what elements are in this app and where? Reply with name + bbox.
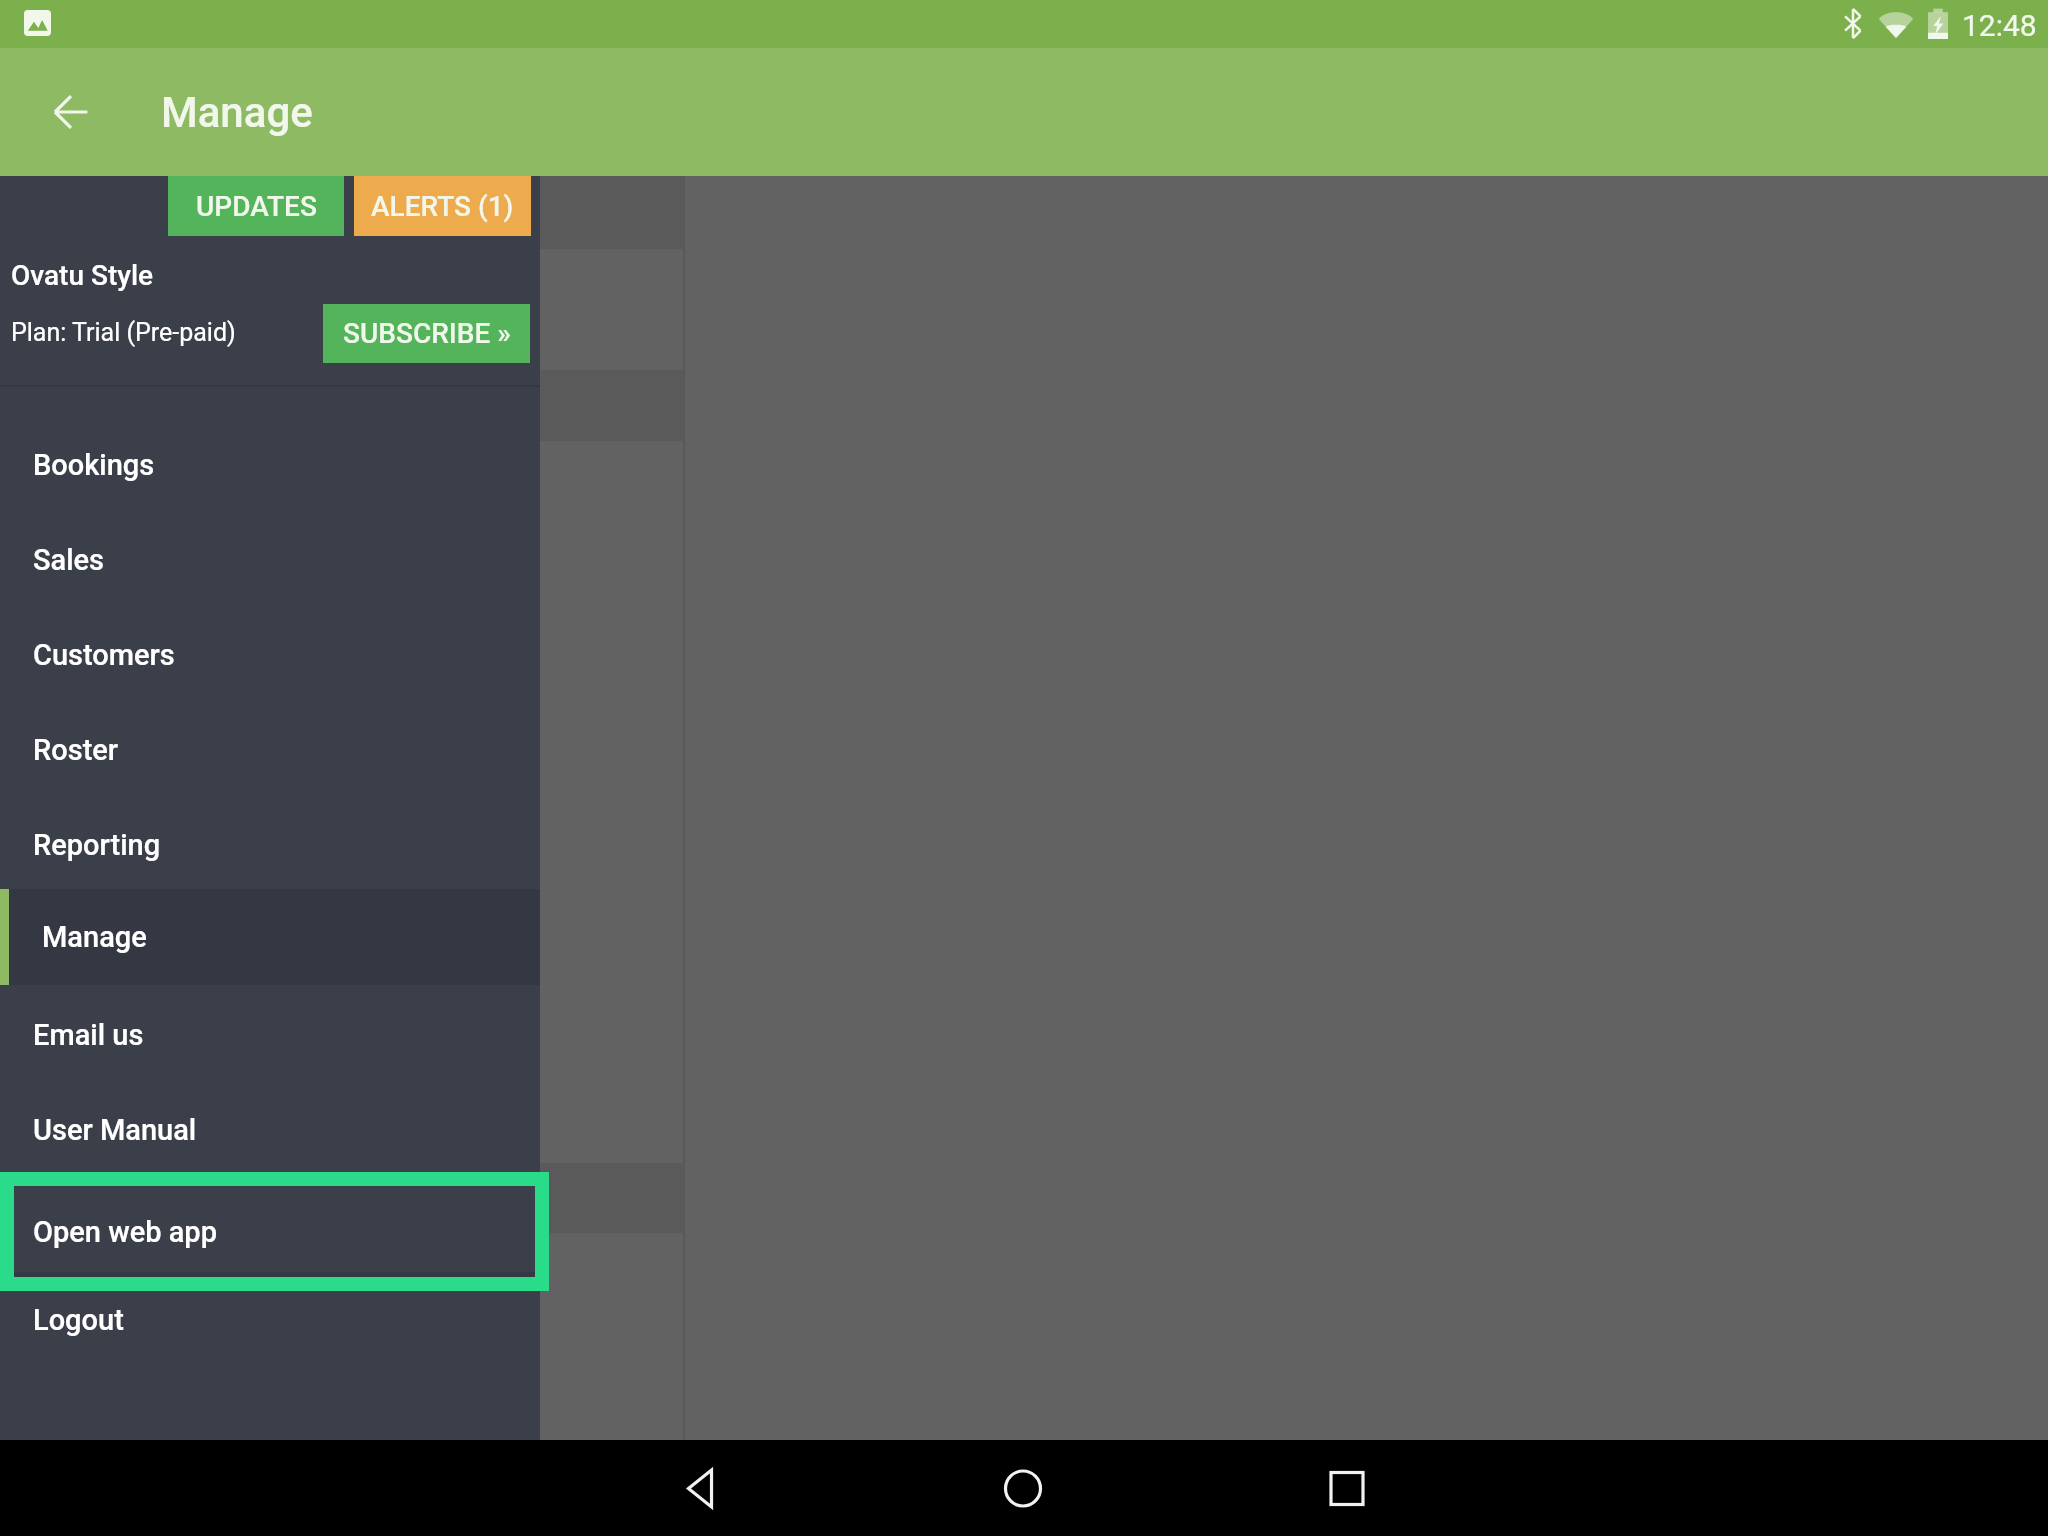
button[interactable]: Recent apps bbox=[1299, 1440, 1395, 1536]
button[interactable]: SUBSCRIBE » bbox=[323, 304, 530, 363]
staticText: SUBSCRIBE » bbox=[343, 317, 511, 350]
button[interactable]: Logout bbox=[0, 1272, 540, 1367]
button[interactable]: Customers bbox=[0, 607, 540, 702]
button[interactable]: Sales bbox=[0, 512, 540, 607]
staticText: Customers bbox=[33, 638, 175, 672]
staticText: ALERTS (1) bbox=[371, 190, 514, 223]
button[interactable]: Back bbox=[652, 1440, 748, 1536]
staticText: Plan: Trial (Pre-paid) bbox=[11, 318, 236, 347]
button[interactable]: User Manual bbox=[0, 1082, 540, 1177]
button[interactable]: Navigate up bbox=[31, 48, 111, 176]
staticText: 12:48 bbox=[1962, 8, 2037, 43]
button[interactable]: Email us bbox=[0, 987, 540, 1082]
staticText: Logout bbox=[33, 1303, 124, 1337]
staticText: Manage bbox=[42, 920, 147, 954]
staticText: Manage bbox=[161, 88, 313, 137]
staticText: Bookings bbox=[33, 448, 155, 482]
staticText: Email us bbox=[33, 1018, 144, 1052]
button[interactable]: Reporting bbox=[0, 797, 540, 892]
button[interactable]: Open web app bbox=[0, 1172, 549, 1291]
button[interactable]: Home bbox=[975, 1440, 1071, 1536]
staticText: Ovatu Style bbox=[11, 259, 154, 292]
button[interactable]: Manage bbox=[0, 889, 540, 985]
staticText: UPDATES bbox=[196, 190, 317, 223]
button[interactable]: UPDATES bbox=[168, 176, 344, 236]
staticText: Sales bbox=[33, 543, 105, 577]
button[interactable]: ALERTS (1) bbox=[354, 176, 531, 236]
staticText: Open web app bbox=[33, 1215, 217, 1249]
staticText: Roster bbox=[33, 733, 119, 767]
button[interactable]: Roster bbox=[0, 702, 540, 797]
button[interactable]: Bookings bbox=[0, 417, 540, 512]
staticText: User Manual bbox=[33, 1113, 197, 1147]
staticText: Reporting bbox=[33, 828, 161, 862]
